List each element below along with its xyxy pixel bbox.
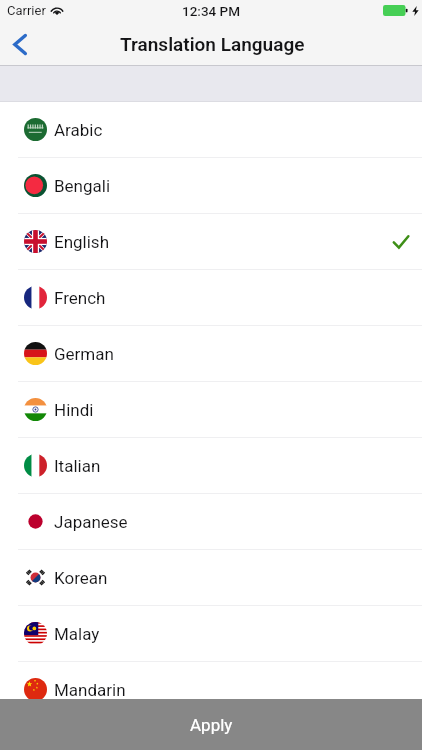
staticText: Arabic bbox=[54, 120, 103, 140]
staticText: Translation Language bbox=[120, 33, 305, 55]
button[interactable]: Italian bbox=[0, 438, 422, 494]
button[interactable]: Hindi bbox=[0, 382, 422, 438]
staticText: Apply bbox=[190, 715, 233, 735]
staticText: French bbox=[54, 288, 106, 308]
staticText: Korean bbox=[54, 568, 108, 588]
staticText: Malay bbox=[54, 624, 100, 644]
staticText: 12:34 PM bbox=[182, 3, 241, 19]
button[interactable]: Apply bbox=[0, 699, 422, 750]
button[interactable]: Arabic bbox=[0, 102, 422, 158]
staticText: Carrier bbox=[7, 3, 46, 18]
button[interactable]: French bbox=[0, 270, 422, 326]
staticText: Italian bbox=[54, 456, 101, 476]
staticText: English bbox=[54, 232, 110, 252]
staticText: Bengali bbox=[54, 176, 111, 196]
button[interactable]: Malay bbox=[0, 606, 422, 662]
staticText: Japanese bbox=[54, 512, 128, 532]
staticText: Hindi bbox=[54, 400, 94, 420]
button[interactable]: Back bbox=[2, 27, 38, 63]
button[interactable]: German bbox=[0, 326, 422, 382]
button[interactable]: Bengali bbox=[0, 158, 422, 214]
staticText: Mandarin bbox=[54, 680, 126, 700]
button[interactable]: Korean bbox=[0, 550, 422, 606]
button[interactable]: English bbox=[0, 214, 422, 270]
staticText: German bbox=[54, 344, 114, 364]
button[interactable]: Mandarin bbox=[0, 662, 422, 718]
button[interactable]: Japanese bbox=[0, 494, 422, 550]
